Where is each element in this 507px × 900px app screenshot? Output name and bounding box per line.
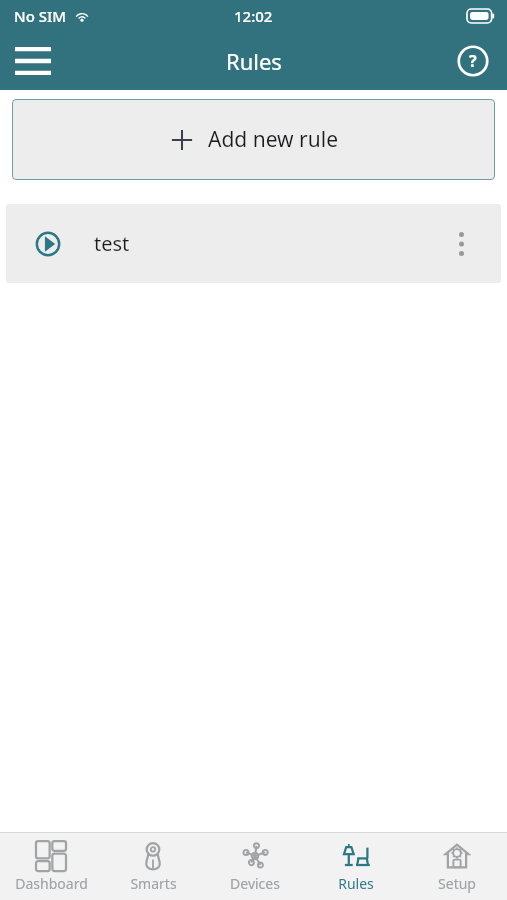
button[interactable]: Menu: [10, 38, 56, 84]
button[interactable]: Help: [451, 39, 495, 83]
button[interactable]: Dashboard: [0, 833, 102, 900]
button[interactable]: Run rule: [6, 204, 501, 283]
button[interactable]: Smarts: [102, 833, 204, 900]
staticText: Dashboard: [15, 874, 88, 893]
staticText: ?: [469, 50, 477, 72]
staticText: No SIM: [14, 6, 67, 26]
button[interactable]: More options: [441, 224, 481, 264]
button[interactable]: Run rule: [26, 222, 70, 266]
button[interactable]: Rules: [305, 833, 406, 900]
staticText: Devices: [230, 874, 280, 893]
staticText: Setup: [438, 874, 476, 893]
staticText: Rules: [338, 874, 374, 893]
staticText: test: [94, 230, 130, 257]
button[interactable]: Devices: [204, 833, 305, 900]
button[interactable]: Setup: [406, 833, 507, 900]
button[interactable]: Add new rule: [12, 99, 495, 180]
staticText: Rules: [226, 46, 282, 76]
staticText: 12:02: [234, 6, 273, 26]
staticText: Smarts: [130, 874, 177, 893]
staticText: Add new rule: [208, 125, 338, 154]
